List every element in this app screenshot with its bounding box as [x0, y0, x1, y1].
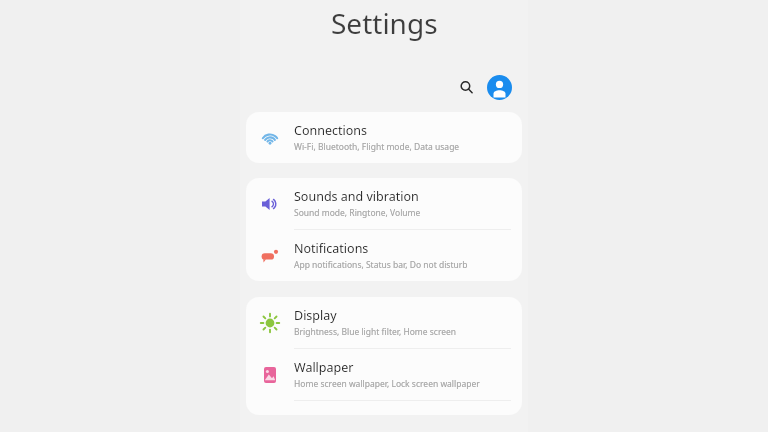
staticText: Wi-Fi, Bluetooth, Flight mode, Data usag… — [294, 141, 460, 153]
button[interactable]: Search — [452, 73, 480, 101]
button[interactable]: Notifications — [246, 230, 522, 281]
staticText: Wallpaper — [294, 359, 354, 376]
staticText: Notifications — [294, 240, 369, 257]
button[interactable]: Connections — [246, 112, 522, 163]
staticText: Display — [294, 307, 337, 324]
button[interactable]: Display — [246, 297, 522, 348]
staticText: Brightness, Blue light filter, Home scre… — [294, 326, 457, 338]
button[interactable]: Wallpaper — [246, 349, 522, 400]
button[interactable]: Sounds and vibration — [246, 178, 522, 229]
staticText: Home screen wallpaper, Lock screen wallp… — [294, 378, 480, 390]
staticText: Settings — [331, 4, 438, 42]
button[interactable]: Account — [487, 75, 512, 100]
staticText: App notifications, Status bar, Do not di… — [294, 259, 468, 271]
staticText: Sounds and vibration — [294, 188, 419, 205]
staticText: Connections — [294, 122, 367, 139]
staticText: Sound mode, Ringtone, Volume — [294, 207, 421, 219]
